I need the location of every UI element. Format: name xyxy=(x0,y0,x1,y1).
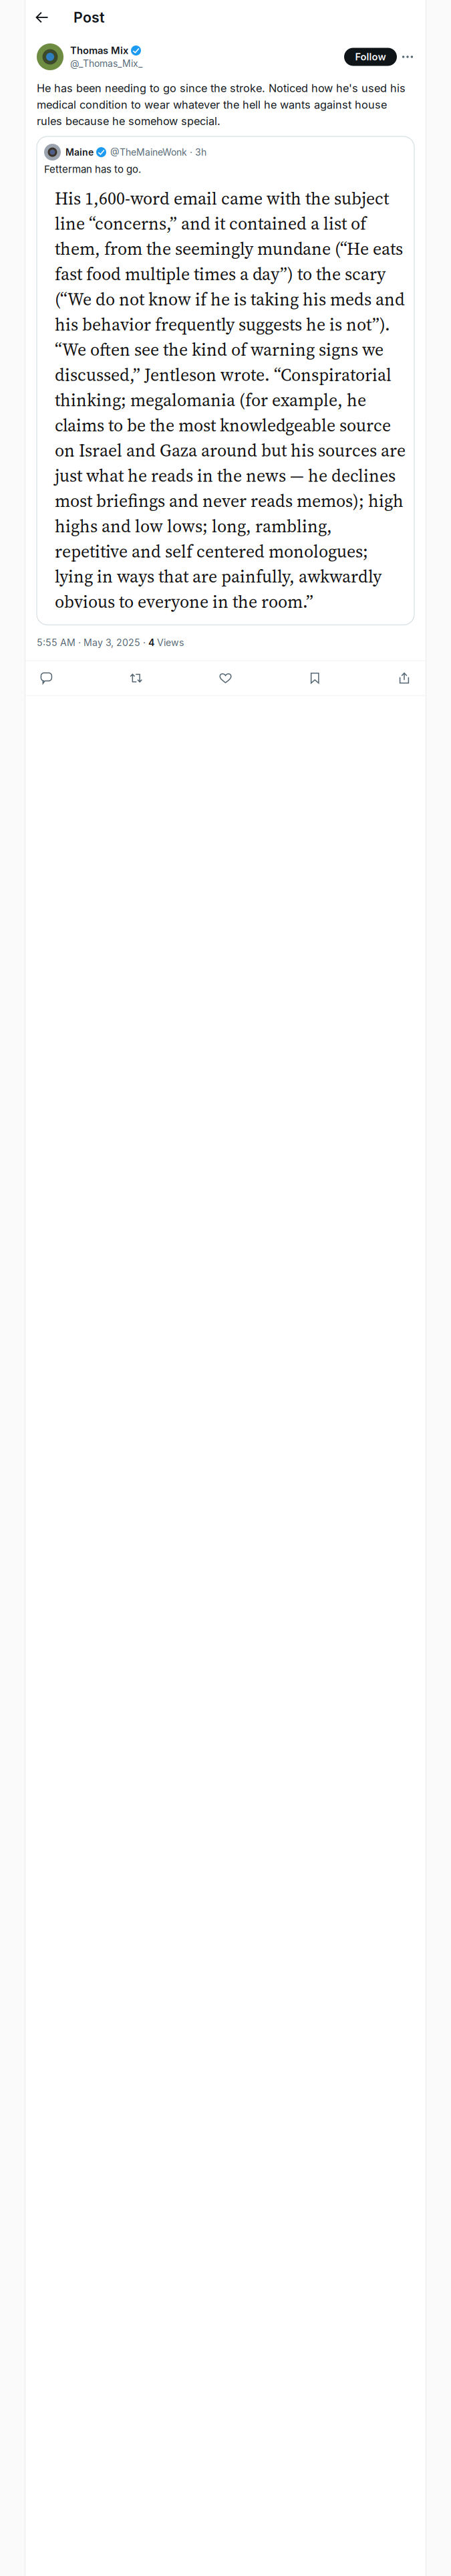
button[interactable]: Follow xyxy=(344,48,397,66)
staticText: 5:55 AM · May 3, 2025 · xyxy=(37,637,148,648)
staticText: @TheMaineWonk · 3h xyxy=(110,147,206,158)
staticText: @_Thomas_Mix_ xyxy=(70,58,142,69)
button[interactable]: Maine xyxy=(37,136,414,625)
staticText: Views xyxy=(154,637,184,648)
button[interactable]: Like xyxy=(219,671,232,685)
button[interactable]: More xyxy=(397,46,418,68)
button[interactable]: Bookmark xyxy=(308,671,322,685)
staticText: His 1,600-word email came with the subje… xyxy=(55,187,406,614)
staticText: Thomas Mix xyxy=(70,45,128,56)
button[interactable]: Back xyxy=(25,0,59,35)
staticText: Fetterman has to go. xyxy=(44,163,141,175)
staticText: 4 xyxy=(148,637,154,648)
staticText: Maine xyxy=(65,147,94,158)
button[interactable]: Reply xyxy=(40,671,53,685)
button[interactable]: Repost xyxy=(129,671,143,685)
staticText: He has been needing to go since the stro… xyxy=(37,82,406,128)
button[interactable]: Share xyxy=(398,671,411,685)
staticText: Post xyxy=(73,9,105,26)
staticText: Follow xyxy=(355,51,386,63)
